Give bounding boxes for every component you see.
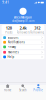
staticText: Following bbox=[30, 31, 44, 34]
staticText: Notifications bbox=[8, 40, 25, 44]
button[interactable]: Favorites bbox=[2, 50, 44, 54]
staticText: Home bbox=[4, 88, 12, 92]
button[interactable]: Notifications bbox=[2, 40, 44, 44]
staticText: Profile bbox=[33, 88, 43, 92]
staticText: Posts bbox=[5, 31, 12, 34]
button[interactable]: Account bbox=[2, 35, 44, 40]
staticText: Search bbox=[19, 88, 27, 92]
button[interactable]: Help bbox=[2, 55, 44, 59]
button[interactable]: Profile bbox=[31, 84, 46, 92]
staticText: 312 bbox=[34, 25, 40, 31]
staticText: alex@example.com bbox=[12, 19, 34, 23]
button[interactable]: Privacy bbox=[2, 45, 44, 49]
staticText: 128 bbox=[6, 25, 12, 31]
staticText: Account bbox=[8, 36, 19, 39]
staticText: Help bbox=[8, 55, 15, 59]
button[interactable]: Home bbox=[0, 84, 15, 92]
staticText: Followers bbox=[16, 31, 29, 34]
button[interactable]: Search bbox=[15, 84, 31, 92]
staticText: 2.4k bbox=[19, 25, 26, 31]
staticText: Alex Morgan bbox=[14, 16, 32, 19]
staticText: Favorites bbox=[8, 50, 19, 54]
staticText: Privacy bbox=[8, 45, 16, 49]
staticText: 9:41 bbox=[2, 1, 9, 4]
